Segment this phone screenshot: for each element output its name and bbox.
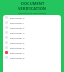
staticText: Document 2 [10,26,25,29]
button[interactable]: Document 3 [5,30,59,35]
staticText: Document 3 [10,31,25,34]
button[interactable]: Document 7 [5,50,59,55]
button[interactable]: Document 6 [5,45,59,50]
staticText: VERIFICATION [18,6,47,11]
button[interactable]: Document 8 [5,55,59,60]
button[interactable]: Document 5 [5,40,59,45]
staticText: Document 1 [10,21,25,24]
staticText: DOCUMENT [21,1,45,6]
staticText: Upload your documents [18,11,47,14]
button[interactable]: Document 4 [5,35,59,40]
staticText: Document 4 [10,36,25,39]
staticText: Document 8 [10,56,25,59]
staticText: Document 6 [10,46,25,49]
staticText: Document 7 [10,51,25,54]
button[interactable]: Document 0 [5,15,59,20]
button[interactable]: Document 2 [5,25,59,30]
staticText: Document 5 [10,41,25,44]
button[interactable]: Document 1 [5,20,59,25]
staticText: Document 0 [10,16,25,19]
